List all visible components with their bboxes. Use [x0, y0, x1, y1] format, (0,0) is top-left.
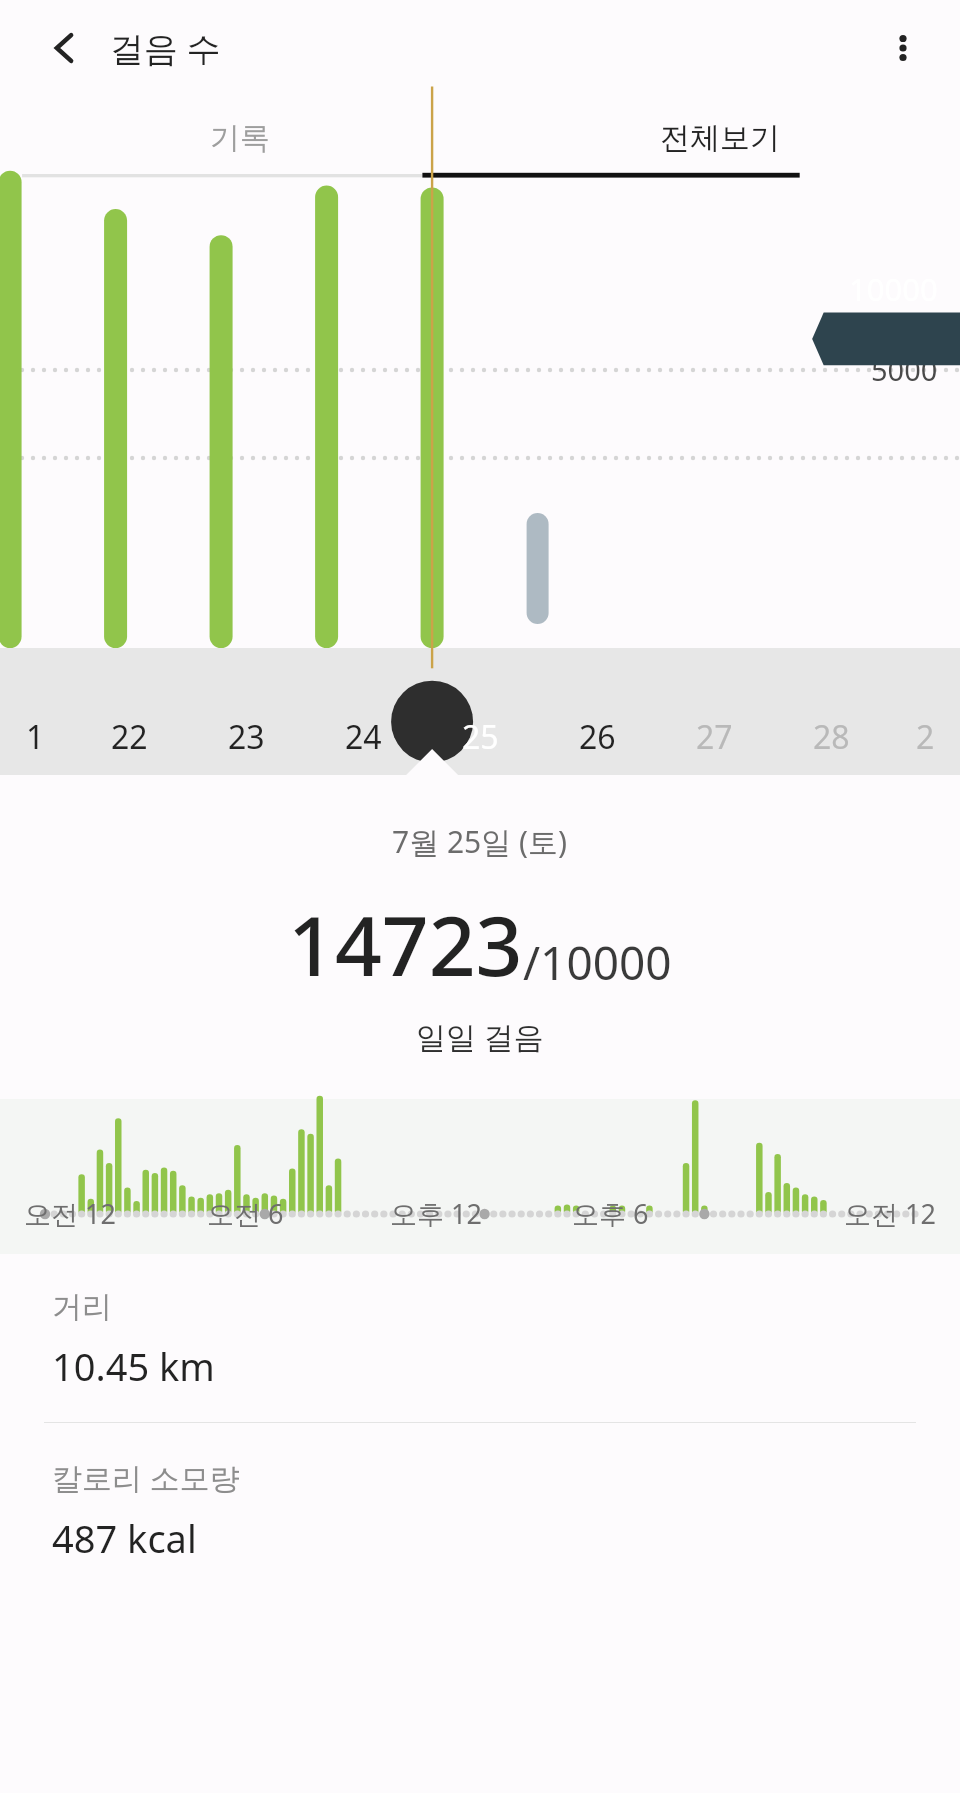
button[interactable]: 25 [422, 648, 539, 775]
button[interactable]: 2 [890, 648, 960, 775]
staticText: 28 [813, 715, 850, 759]
staticText: 오후 12 [390, 1195, 482, 1232]
button[interactable]: 기록 [0, 96, 480, 180]
staticText: 25 [462, 715, 499, 759]
button[interactable]: 칼로리 소모량 [0, 1423, 960, 1594]
staticText: 487 kcal [52, 1512, 197, 1564]
staticText: 전체보기 [660, 119, 780, 157]
staticText: 7월 25일 (토) [392, 821, 568, 862]
staticText: 오후 6 [572, 1195, 649, 1232]
staticText: 칼로리 소모량 [52, 1457, 240, 1498]
staticText: 오전 6 [207, 1195, 284, 1232]
staticText: 거리 [52, 1288, 112, 1326]
button[interactable]: 28 [773, 648, 890, 775]
button[interactable]: 1 [0, 648, 71, 775]
button[interactable]: 26 [539, 648, 656, 775]
button[interactable]: Back [34, 17, 96, 79]
staticText: 22 [111, 715, 148, 759]
staticText: 기록 [210, 119, 270, 157]
staticText: 5000 [871, 350, 938, 389]
staticText: 2 [916, 715, 935, 759]
staticText: 26 [579, 715, 616, 759]
button[interactable]: More options [872, 17, 934, 79]
staticText: 오전 12 [24, 1195, 116, 1232]
staticText: 오전 12 [844, 1195, 936, 1232]
button[interactable]: 22 [71, 648, 188, 775]
staticText: 24 [345, 715, 382, 759]
button[interactable]: 24 [305, 648, 422, 775]
button[interactable]: 23 [188, 648, 305, 775]
button[interactable]: 27 [656, 648, 773, 775]
button[interactable]: 전체보기 [480, 96, 960, 180]
button[interactable]: 거리 [0, 1254, 960, 1423]
staticText: 일일 걸음 [416, 1016, 544, 1057]
staticText: 23 [228, 715, 265, 759]
staticText: /10000 [523, 931, 672, 994]
staticText: 27 [696, 715, 733, 759]
staticText: 1 [26, 715, 45, 759]
staticText: 걸음 수 [110, 25, 221, 71]
staticText: 14723 [288, 888, 523, 1000]
staticText: 10.45 km [52, 1340, 215, 1392]
